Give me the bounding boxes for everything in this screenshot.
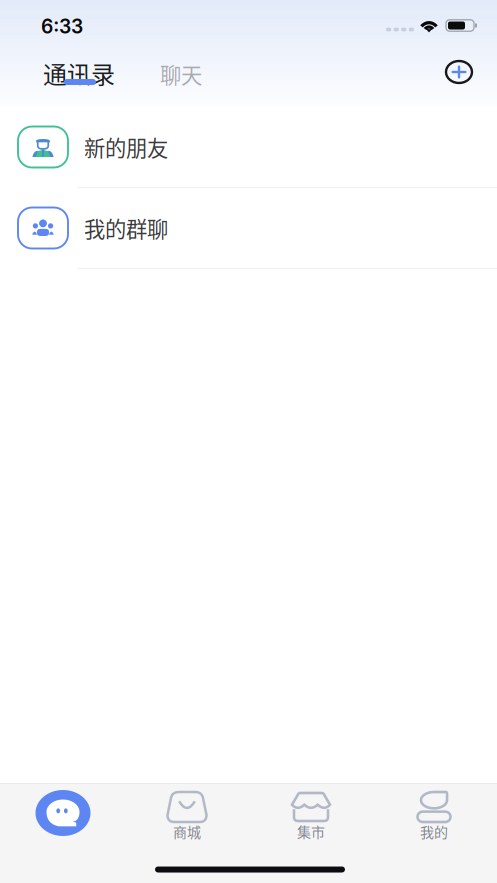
staticText: 商城 bbox=[173, 821, 201, 842]
staticText: 我的 bbox=[420, 821, 448, 842]
staticText: 我的群聊 bbox=[84, 213, 168, 243]
staticText: 聊天 bbox=[160, 59, 202, 89]
button[interactable]: 通讯录 bbox=[0, 0, 497, 107]
staticText: 通讯录 bbox=[43, 56, 115, 90]
staticText: 6:33 bbox=[41, 15, 83, 38]
button[interactable]: 我的 bbox=[0, 783, 497, 883]
button[interactable]: 添加 bbox=[0, 0, 497, 107]
button[interactable]: 我的群聊 bbox=[0, 188, 497, 269]
button[interactable]: 新的朋友 bbox=[0, 107, 497, 188]
staticText: 新的朋友 bbox=[84, 132, 168, 162]
button[interactable]: 聊天 bbox=[0, 0, 497, 107]
button[interactable]: 商城 bbox=[0, 783, 497, 883]
button[interactable]: 集市 bbox=[0, 783, 497, 883]
staticText: 集市 bbox=[297, 821, 325, 842]
button[interactable]: 消息 bbox=[0, 783, 497, 883]
